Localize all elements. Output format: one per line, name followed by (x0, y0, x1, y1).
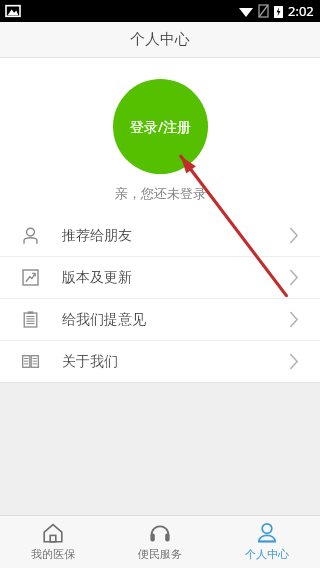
button[interactable]: 我的医保 (0, 516, 106, 568)
staticText: 我的医保 (31, 547, 75, 561)
staticText: 推荐给朋友 (62, 227, 132, 245)
button[interactable]: 便民服务 (106, 516, 213, 568)
staticText: 给我们提意见 (62, 311, 146, 329)
button[interactable]: 版本及更新 (0, 257, 320, 298)
staticText: 个人中心 (245, 547, 289, 561)
button[interactable]: 关于我们 (0, 341, 320, 382)
staticText: 2:02 (288, 2, 314, 20)
button[interactable]: 个人中心 (213, 516, 320, 568)
staticText: 亲，您还未登录 (115, 185, 206, 201)
staticText: 便民服务 (138, 547, 182, 561)
staticText: 关于我们 (62, 353, 118, 371)
staticText: 个人中心 (130, 30, 190, 49)
staticText: 版本及更新 (62, 269, 132, 287)
staticText: 登录/注册 (130, 117, 192, 136)
button[interactable]: 推荐给朋友 (0, 215, 320, 256)
button[interactable]: 登录/注册 (113, 79, 208, 174)
button[interactable]: 给我们提意见 (0, 299, 320, 340)
